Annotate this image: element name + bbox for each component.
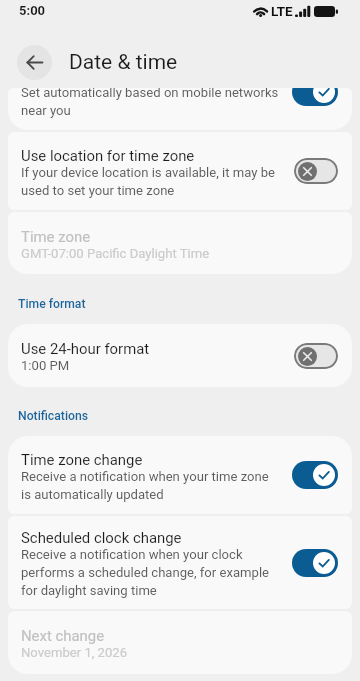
button[interactable]: Scheduled clock change xyxy=(8,516,352,609)
staticText: 5:00 xyxy=(19,3,46,18)
staticText: If your device location is available, it… xyxy=(21,165,276,198)
button[interactable]: Time zone xyxy=(8,212,352,274)
staticText: GMT-07:00 Pacific Daylight Time xyxy=(21,246,210,261)
button[interactable]: Next change xyxy=(8,611,352,674)
staticText: Time zone xyxy=(21,228,91,245)
button[interactable]: Use location for time zone xyxy=(8,132,352,210)
button[interactable]: Set automatically based on mobile networ… xyxy=(8,88,352,130)
staticText: Set automatically based on mobile networ… xyxy=(21,88,279,118)
staticText: Next change xyxy=(21,627,105,644)
staticText: Time format xyxy=(18,297,86,311)
button[interactable]: Toggle on xyxy=(292,549,338,577)
button[interactable]: Toggle on xyxy=(292,88,338,106)
button[interactable]: Use 24-hour format xyxy=(8,324,352,387)
staticText: Receive a notification when your clock p… xyxy=(21,547,270,598)
staticText: Scheduled clock change xyxy=(21,529,182,546)
button[interactable]: Toggle on xyxy=(292,461,338,489)
button[interactable]: Toggle off xyxy=(294,158,338,184)
staticText: 1:00 PM xyxy=(21,358,70,373)
staticText: November 1, 2026 xyxy=(21,645,127,660)
staticText: LTE xyxy=(271,3,293,19)
staticText: Date & time xyxy=(69,50,178,75)
staticText: Use location for time zone xyxy=(21,147,195,164)
staticText: Use 24-hour format xyxy=(21,340,150,357)
button[interactable]: Back xyxy=(17,45,52,80)
staticText: Notifications xyxy=(18,409,89,423)
staticText: Time zone change xyxy=(21,451,143,468)
button[interactable]: Toggle off xyxy=(294,343,338,369)
button[interactable]: Time zone change xyxy=(8,436,352,514)
staticText: Receive a notification when your time zo… xyxy=(21,469,269,502)
